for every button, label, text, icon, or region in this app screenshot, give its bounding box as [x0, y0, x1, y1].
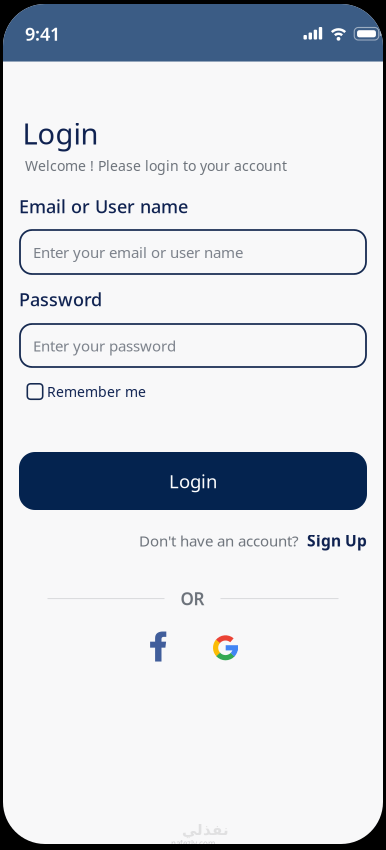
- button[interactable]: Login: [19, 452, 367, 510]
- staticText: nafezly.com: [171, 838, 215, 849]
- staticText: Email or User name: [19, 194, 188, 218]
- staticText: Password: [19, 287, 102, 311]
- staticText: Login: [169, 468, 217, 494]
- button[interactable]: Enter your password: [20, 324, 366, 367]
- staticText: Remember me: [47, 382, 146, 401]
- button[interactable]: Enter your email or user name: [20, 230, 366, 274]
- staticText: Sign Up: [307, 530, 367, 551]
- staticText: Login: [22, 113, 98, 153]
- button[interactable]: Remember me: [26, 382, 146, 401]
- button[interactable]: [144, 631, 166, 661]
- staticText: نفذلي: [181, 821, 228, 838]
- staticText: Welcome ! Please login to your account: [25, 156, 287, 175]
- button[interactable]: [213, 635, 238, 660]
- staticText: Enter your password: [33, 335, 176, 356]
- staticText: 9:41: [25, 21, 60, 46]
- staticText: Enter your email or user name: [33, 242, 243, 262]
- button[interactable]: Sign Up: [307, 530, 367, 551]
- staticText: OR: [180, 587, 204, 610]
- staticText: Don't have an account?: [139, 530, 299, 551]
